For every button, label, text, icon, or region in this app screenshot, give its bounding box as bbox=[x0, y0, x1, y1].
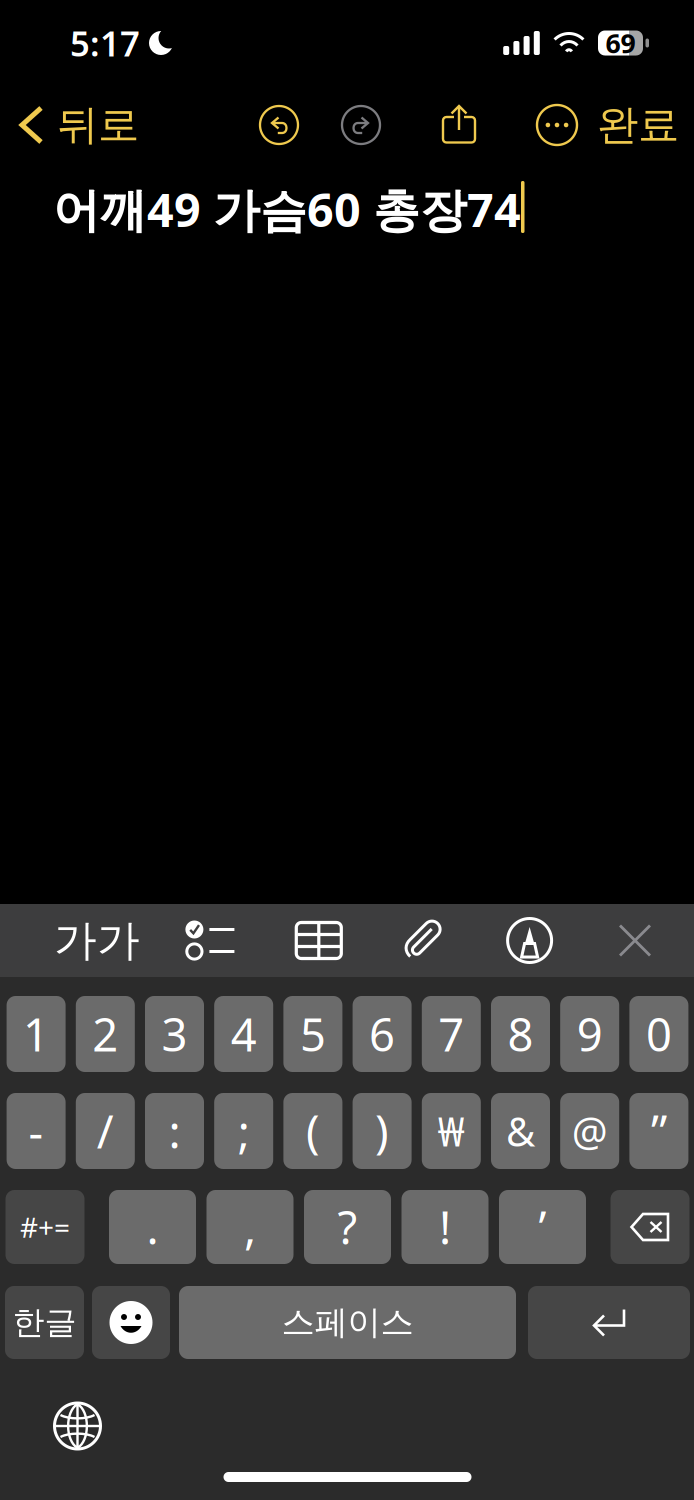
button[interactable]: 완료 bbox=[597, 92, 679, 158]
staticText: 스페이스 bbox=[281, 1302, 413, 1343]
staticText: ! bbox=[439, 1197, 451, 1257]
staticText: 완료 bbox=[597, 100, 679, 150]
staticText: ’ bbox=[538, 1197, 546, 1257]
button[interactable]: & bbox=[491, 1093, 550, 1169]
button[interactable]: : bbox=[145, 1093, 204, 1169]
staticText: & bbox=[506, 1104, 535, 1157]
button[interactable]: 7 bbox=[422, 996, 481, 1072]
button[interactable]: 8 bbox=[491, 996, 550, 1072]
staticText: 7 bbox=[438, 1004, 464, 1064]
button[interactable]: ; bbox=[214, 1093, 273, 1169]
button[interactable]: ! bbox=[401, 1190, 488, 1264]
staticText: 6 bbox=[369, 1004, 395, 1064]
button[interactable]: ) bbox=[353, 1093, 412, 1169]
staticText: - bbox=[29, 1101, 44, 1161]
staticText: #+= bbox=[20, 1208, 70, 1246]
staticText: 어깨49 가슴60 총장74 bbox=[53, 178, 521, 240]
staticText: 한글 bbox=[12, 1303, 76, 1342]
button[interactable]: @ bbox=[560, 1093, 619, 1169]
button[interactable]: 3 bbox=[145, 996, 204, 1072]
button[interactable]: ( bbox=[283, 1093, 342, 1169]
staticText: 8 bbox=[507, 1004, 533, 1064]
button[interactable]: Emoji bbox=[92, 1286, 170, 1359]
button[interactable]: Share bbox=[428, 94, 490, 156]
staticText: ₩ bbox=[438, 1104, 465, 1157]
staticText: 9 bbox=[577, 1004, 603, 1064]
button[interactable]: Switch keyboard bbox=[0, 1381, 100, 1449]
staticText: ( bbox=[306, 1101, 320, 1161]
button[interactable]: Table bbox=[282, 904, 356, 976]
button[interactable]: ’ bbox=[499, 1190, 586, 1264]
button[interactable]: 2 bbox=[76, 996, 135, 1072]
button[interactable]: Undo bbox=[248, 94, 310, 156]
button[interactable]: Checklist bbox=[176, 904, 250, 976]
button[interactable]: Hide keyboard bbox=[598, 904, 672, 976]
staticText: ; bbox=[238, 1101, 250, 1161]
button[interactable]: Markup bbox=[493, 904, 567, 976]
button[interactable]: More bbox=[526, 94, 588, 156]
staticText: 0 bbox=[646, 1004, 672, 1064]
button[interactable]: 5 bbox=[283, 996, 342, 1072]
button[interactable]: 4 bbox=[214, 996, 273, 1072]
staticText: @ bbox=[572, 1104, 608, 1157]
button[interactable]: / bbox=[76, 1093, 135, 1169]
staticText: . bbox=[146, 1197, 158, 1257]
button[interactable]: - bbox=[7, 1093, 66, 1169]
staticText: 뒤로 bbox=[57, 100, 139, 150]
button[interactable]: 1 bbox=[7, 996, 66, 1072]
staticText: / bbox=[97, 1101, 114, 1161]
button[interactable]: , bbox=[206, 1190, 293, 1264]
button[interactable]: #+= bbox=[5, 1190, 84, 1264]
button[interactable]: . bbox=[109, 1190, 196, 1264]
button[interactable]: 스페이스 bbox=[179, 1286, 516, 1359]
button[interactable]: 한글 bbox=[5, 1286, 84, 1359]
staticText: 69 bbox=[605, 25, 635, 61]
button[interactable]: ” bbox=[629, 1093, 688, 1169]
button[interactable]: Redo bbox=[330, 94, 392, 156]
staticText: ? bbox=[337, 1197, 357, 1257]
staticText: : bbox=[168, 1101, 180, 1161]
staticText: 5 bbox=[300, 1004, 326, 1064]
staticText: 3 bbox=[161, 1004, 187, 1064]
button[interactable]: Attach bbox=[387, 904, 461, 976]
staticText: 5:17 bbox=[70, 20, 140, 66]
staticText: ” bbox=[651, 1101, 667, 1161]
staticText: 4 bbox=[231, 1004, 257, 1064]
staticText: 2 bbox=[92, 1004, 118, 1064]
button[interactable]: 0 bbox=[629, 996, 688, 1072]
staticText: 가가 bbox=[54, 914, 140, 967]
staticText: , bbox=[244, 1197, 256, 1257]
button[interactable]: ₩ bbox=[422, 1093, 481, 1169]
button[interactable]: 가가 bbox=[49, 904, 145, 976]
button[interactable]: ? bbox=[304, 1190, 391, 1264]
staticText: ) bbox=[375, 1101, 389, 1161]
button[interactable]: 9 bbox=[560, 996, 619, 1072]
button[interactable]: Delete bbox=[610, 1190, 689, 1264]
button[interactable]: Return bbox=[528, 1286, 690, 1359]
staticText: 1 bbox=[23, 1004, 49, 1064]
button[interactable]: 6 bbox=[353, 996, 412, 1072]
button[interactable]: 뒤로 bbox=[4, 92, 139, 158]
